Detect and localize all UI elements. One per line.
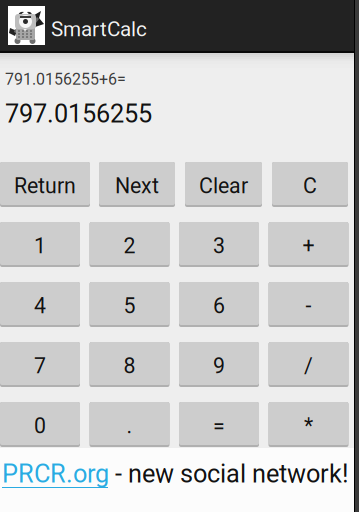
button[interactable]: * [268,402,348,447]
button[interactable]: Clear [185,162,262,207]
staticText: . [126,413,132,438]
button[interactable]: 7 [0,342,80,387]
button[interactable]: 8 [89,342,169,387]
staticText: / [304,353,313,378]
staticText: 8 [123,353,135,378]
staticText: C [303,173,317,198]
staticText: SmartCalc [51,17,147,41]
staticText: 1 [34,233,46,258]
staticText: 6 [213,293,225,318]
button[interactable]: + [268,222,348,267]
staticText: = [213,413,225,438]
staticText: PRCR.org [2,459,109,489]
button[interactable]: / [268,342,348,387]
button[interactable]: - [268,282,348,327]
staticText: - [305,293,311,318]
staticText: 0 [34,413,46,438]
staticText: 7 [34,353,46,378]
button[interactable]: Next [99,162,175,207]
staticText: - new social network! [109,459,349,489]
button[interactable]: PRCR.org [0,448,354,512]
button[interactable]: 6 [179,282,259,327]
button[interactable]: 0 [0,402,80,447]
button[interactable]: 2 [89,222,169,267]
staticText: 797.0156255 [5,99,152,129]
staticText: 4 [34,293,46,318]
button[interactable]: 4 [0,282,80,327]
staticText: Clear [199,173,248,198]
staticText: Next [115,173,159,198]
staticText: 791.0156255+6= [5,70,126,89]
button[interactable]: C [272,162,348,207]
staticText: 9 [213,353,225,378]
button[interactable]: 9 [179,342,259,387]
button[interactable]: 5 [89,282,169,327]
staticText: 5 [123,293,135,318]
staticText: + [302,233,314,258]
button[interactable]: 3 [179,222,259,267]
button[interactable]: 1 [0,222,80,267]
staticText: 2 [123,233,135,258]
button[interactable]: Return [0,162,90,207]
button[interactable]: . [89,402,169,447]
staticText: Return [14,173,76,198]
staticText: 3 [213,233,225,258]
button[interactable]: = [179,402,259,447]
staticText: * [304,413,313,438]
